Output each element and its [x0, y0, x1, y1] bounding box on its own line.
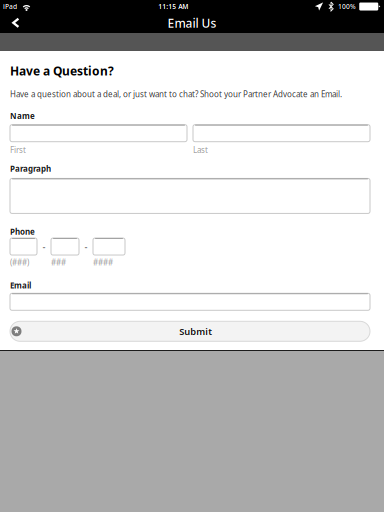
- staticText: Phone: [10, 226, 35, 237]
- staticText: First: [10, 145, 26, 155]
- staticText: Submit: [179, 325, 212, 337]
- staticText: iPad: [3, 2, 17, 11]
- staticText: Paragraph: [10, 163, 51, 174]
- staticText: Name: [10, 111, 35, 121]
- button[interactable]: Submit: [10, 321, 370, 341]
- staticText: Email: [10, 280, 31, 291]
- button[interactable]: Back: [3, 13, 29, 33]
- staticText: 11:15 AM: [158, 2, 188, 11]
- staticText: Have a Question?: [10, 63, 114, 79]
- staticText: Email Us: [167, 15, 216, 31]
- staticText: ####: [93, 257, 113, 268]
- staticText: 100%: [338, 2, 356, 11]
- staticText: -: [42, 240, 45, 253]
- staticText: -: [84, 240, 87, 253]
- staticText: Last: [193, 145, 208, 155]
- staticText: Have a question about a deal, or just wa…: [10, 89, 342, 99]
- staticText: (###): [10, 257, 29, 268]
- staticText: ###: [51, 257, 66, 268]
